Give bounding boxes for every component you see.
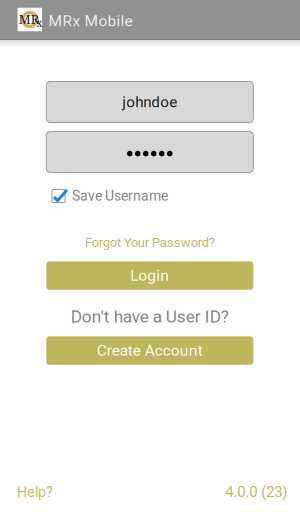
staticText: Save Username — [72, 188, 168, 204]
button[interactable]: Login — [46, 261, 253, 290]
button[interactable]: Create Account — [46, 336, 253, 365]
staticText: 4.0.0 (23) — [225, 483, 287, 501]
staticText: Create Account — [97, 341, 203, 360]
button[interactable]: Forgot Your Password? — [46, 234, 253, 250]
staticText: Help? — [17, 484, 53, 500]
staticText: MRx Mobile — [49, 12, 133, 30]
button[interactable]: Save Username — [52, 188, 259, 204]
staticText: MR — [19, 10, 39, 28]
staticText: Don't have a User ID? — [71, 306, 229, 327]
staticText: Forgot Your Password? — [85, 235, 215, 250]
staticText: johndoe — [122, 93, 177, 111]
staticText: Login — [130, 266, 169, 285]
staticText: x — [36, 16, 42, 30]
button[interactable]: Help? — [17, 484, 77, 500]
